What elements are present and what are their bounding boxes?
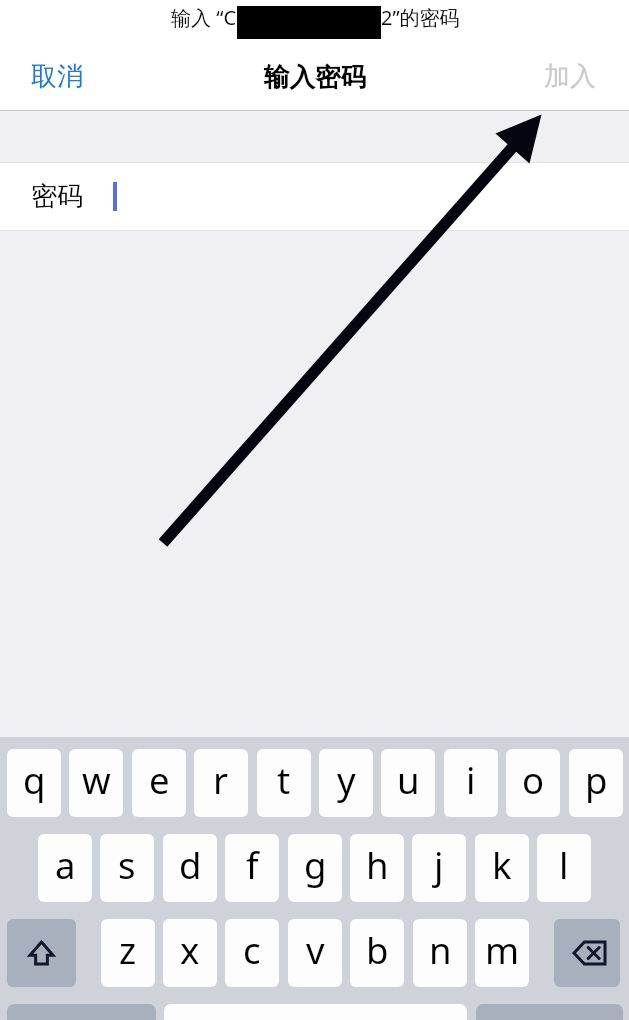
staticText: d xyxy=(179,840,202,890)
staticText: f xyxy=(246,840,259,890)
button[interactable]: b xyxy=(350,919,404,987)
button[interactable]: Backspace xyxy=(554,919,620,987)
staticText: h xyxy=(366,840,389,890)
button[interactable]: n xyxy=(413,919,467,987)
staticText: c xyxy=(243,925,261,975)
button[interactable]: Return xyxy=(476,1004,623,1020)
staticText: m xyxy=(485,925,520,975)
staticText: 输入密码 xyxy=(264,61,366,93)
button[interactable]: h xyxy=(350,834,404,902)
button[interactable]: f xyxy=(225,834,279,902)
button[interactable]: j xyxy=(412,834,466,902)
button[interactable]: 取消 xyxy=(20,52,94,105)
staticText: 密码 xyxy=(31,180,83,213)
staticText: q xyxy=(23,755,46,805)
button[interactable]: m xyxy=(475,919,529,987)
staticText: p xyxy=(585,755,608,805)
button[interactable]: r xyxy=(194,749,248,817)
button[interactable]: l xyxy=(537,834,591,902)
staticText: 2”的密码 xyxy=(381,4,460,31)
button[interactable]: c xyxy=(225,919,279,987)
staticText: v xyxy=(306,925,325,975)
button[interactable]: Emoji xyxy=(7,1004,156,1020)
button[interactable]: Shift xyxy=(7,919,76,987)
staticText: x xyxy=(180,925,200,975)
staticText: r xyxy=(213,755,229,805)
button[interactable]: y xyxy=(319,749,373,817)
button[interactable]: a xyxy=(38,834,92,902)
button[interactable]: t xyxy=(257,749,311,817)
button[interactable]: w xyxy=(69,749,123,817)
staticText: l xyxy=(559,840,569,890)
button[interactable]: q xyxy=(7,749,61,817)
staticText: o xyxy=(522,755,545,805)
staticText: g xyxy=(304,840,327,890)
button[interactable]: z xyxy=(101,919,155,987)
staticText: z xyxy=(119,925,137,975)
staticText: u xyxy=(397,755,420,805)
button[interactable]: p xyxy=(569,749,623,817)
button[interactable]: s xyxy=(100,834,154,902)
button[interactable]: i xyxy=(444,749,498,817)
staticText: j xyxy=(434,840,444,890)
button[interactable]: k xyxy=(475,834,529,902)
button[interactable]: o xyxy=(506,749,560,817)
staticText: b xyxy=(366,925,389,975)
button[interactable]: u xyxy=(381,749,435,817)
staticText: t xyxy=(277,755,291,805)
staticText: e xyxy=(149,755,170,805)
staticText: w xyxy=(82,755,111,805)
staticText: 输入 “C xyxy=(171,4,237,31)
staticText: 加入 xyxy=(544,60,596,93)
staticText: k xyxy=(492,840,512,890)
staticText: n xyxy=(429,925,452,975)
staticText: a xyxy=(55,840,76,890)
button[interactable]: 密码 xyxy=(0,163,629,231)
button[interactable]: e xyxy=(132,749,186,817)
button[interactable]: g xyxy=(288,834,342,902)
staticText: y xyxy=(337,755,356,805)
staticText: 取消 xyxy=(31,60,83,93)
button[interactable]: 加入 xyxy=(533,52,607,105)
staticText: s xyxy=(118,840,136,890)
staticText: i xyxy=(466,755,476,805)
button[interactable]: d xyxy=(163,834,217,902)
button[interactable]: v xyxy=(288,919,342,987)
button[interactable]: x xyxy=(163,919,217,987)
